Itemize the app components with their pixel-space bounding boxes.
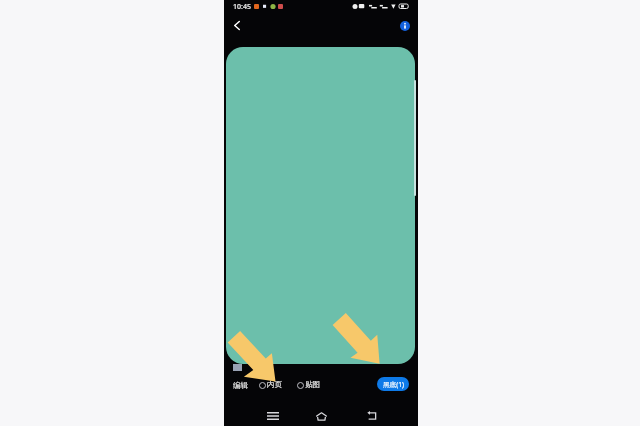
staticText: 内页 <box>267 380 283 390</box>
button[interactable]: 内页 <box>259 380 283 390</box>
button[interactable]: Back <box>225 13 249 37</box>
button[interactable]: Home <box>309 405 333 426</box>
button[interactable]: Info <box>394 15 416 37</box>
staticText: 黑底(1) <box>383 380 404 389</box>
button[interactable]: 编辑 <box>233 381 249 391</box>
button[interactable]: Back <box>360 405 384 426</box>
button[interactable]: 黑底(1) <box>377 377 409 391</box>
staticText: 贴图 <box>305 380 321 390</box>
button[interactable]: Recent apps <box>261 405 285 426</box>
button[interactable]: 贴图 <box>297 380 321 390</box>
staticText: 10:45 <box>233 2 251 12</box>
